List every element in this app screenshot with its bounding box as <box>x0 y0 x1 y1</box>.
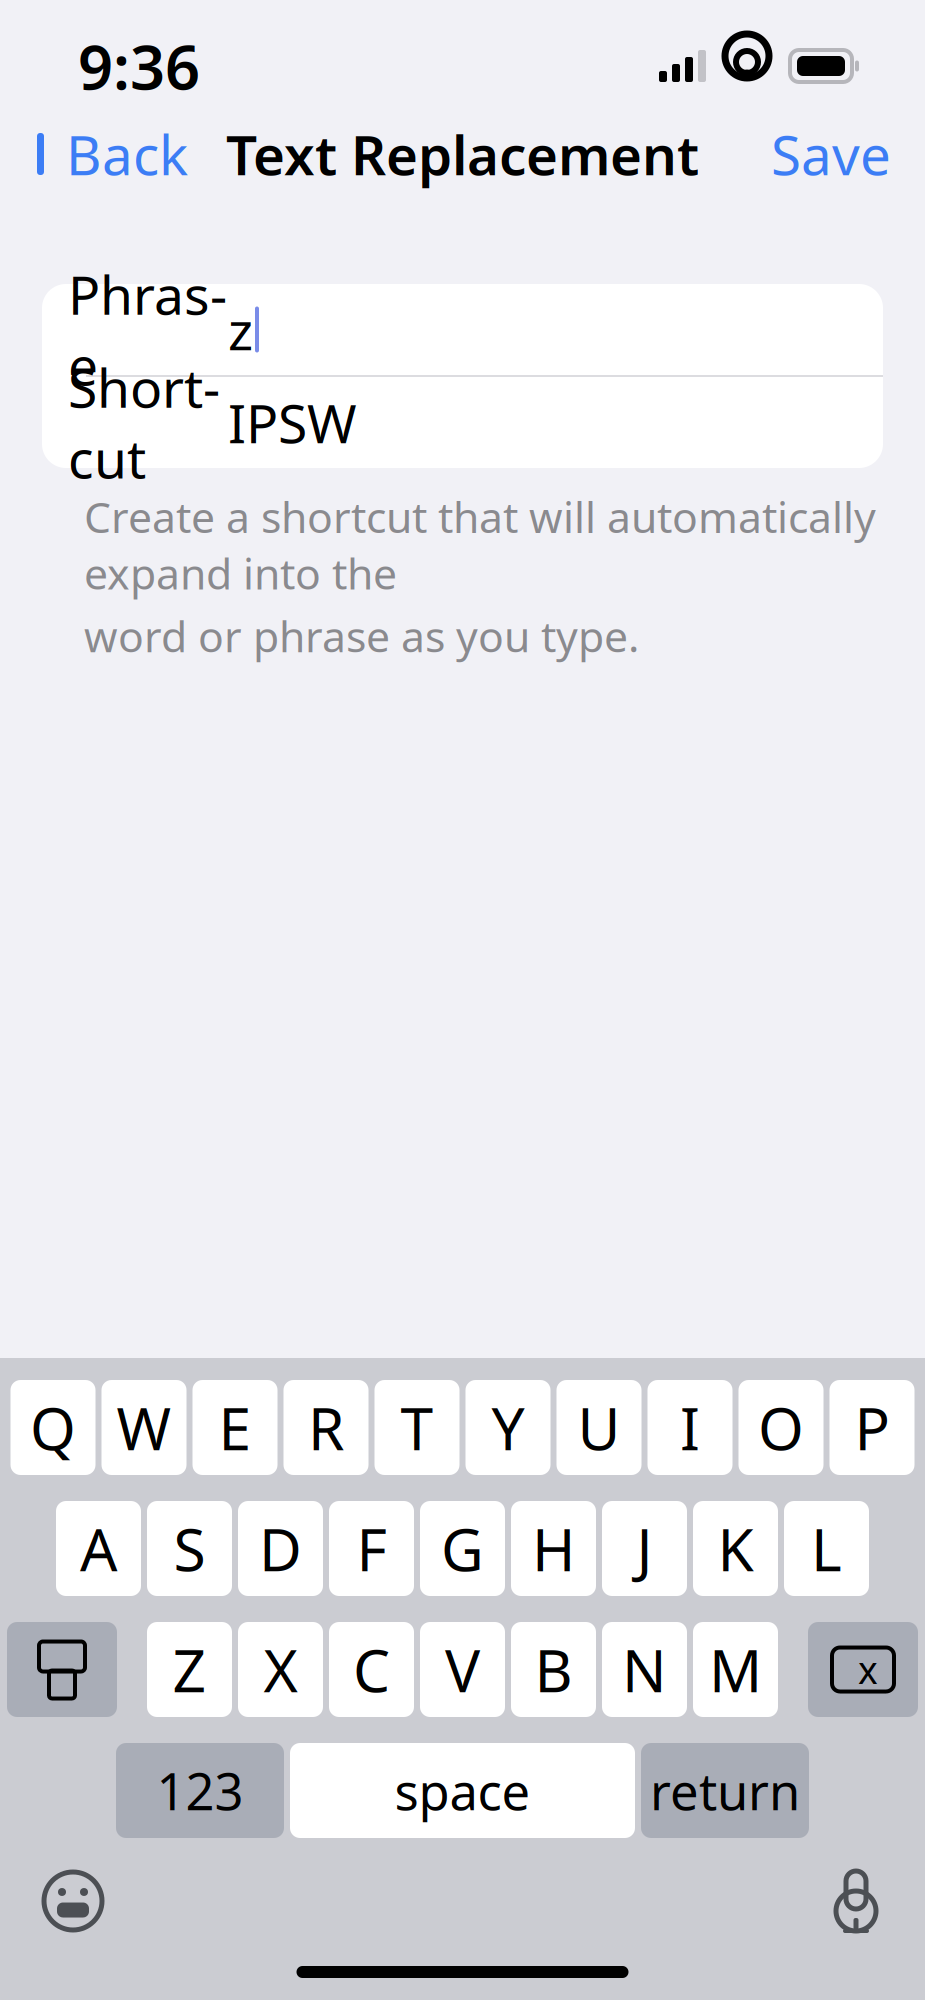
button[interactable]: I <box>647 1380 732 1475</box>
staticText: S <box>173 1509 205 1587</box>
staticText: M <box>709 1630 762 1708</box>
button[interactable]: K <box>693 1501 778 1596</box>
staticText: K <box>717 1509 753 1587</box>
staticText: V <box>445 1630 480 1708</box>
staticText: W <box>116 1388 171 1466</box>
button[interactable]: V <box>420 1622 505 1717</box>
staticText: G <box>441 1509 484 1587</box>
button[interactable]: Q <box>10 1380 95 1475</box>
button[interactable]: R <box>283 1380 368 1475</box>
staticText: R <box>308 1388 344 1466</box>
button[interactable]: T <box>374 1380 459 1475</box>
staticText: word or phrase as you type. <box>84 607 639 664</box>
staticText: T <box>400 1388 433 1466</box>
button[interactable]: C <box>329 1622 414 1717</box>
staticText: B <box>534 1630 572 1708</box>
staticText: I <box>680 1388 700 1466</box>
staticText: A <box>80 1509 117 1587</box>
button[interactable]: E <box>192 1380 277 1475</box>
button[interactable]: U <box>556 1380 641 1475</box>
button[interactable]: X <box>238 1622 323 1717</box>
button[interactable]: Shift <box>7 1622 117 1717</box>
staticText: return <box>650 1757 800 1824</box>
button[interactable]: G <box>420 1501 505 1596</box>
staticText: Phrase <box>68 259 227 400</box>
staticText: L <box>811 1509 842 1587</box>
staticText: F <box>356 1509 386 1587</box>
button[interactable]: Phrase <box>42 284 883 375</box>
staticText: Shortcut <box>68 352 220 493</box>
button[interactable]: F <box>329 1501 414 1596</box>
staticText: IPSW <box>228 387 357 458</box>
staticText: Z <box>172 1630 206 1708</box>
button[interactable]: P <box>829 1380 914 1475</box>
staticText: Create a shortcut that will automaticall… <box>84 488 876 601</box>
button[interactable]: Emoji keyboard <box>26 1854 120 1948</box>
button[interactable]: Save <box>757 108 905 200</box>
staticText: N <box>622 1630 667 1708</box>
button[interactable]: Back <box>18 108 202 200</box>
button[interactable]: 123 <box>116 1743 284 1838</box>
button[interactable]: N <box>602 1622 687 1717</box>
button[interactable]: Shortcut <box>42 377 883 468</box>
staticText: Save <box>771 118 891 190</box>
button[interactable]: O <box>738 1380 823 1475</box>
staticText: Text Replacement <box>226 118 699 190</box>
staticText: P <box>854 1388 889 1466</box>
button[interactable]: H <box>511 1501 596 1596</box>
staticText: C <box>353 1630 390 1708</box>
staticText: E <box>218 1388 251 1466</box>
button[interactable]: B <box>511 1622 596 1717</box>
staticText: Back <box>66 118 188 190</box>
button[interactable]: Y <box>465 1380 550 1475</box>
button[interactable]: W <box>101 1380 186 1475</box>
button[interactable]: J <box>602 1501 687 1596</box>
staticText: 123 <box>156 1757 243 1824</box>
button[interactable]: S <box>147 1501 232 1596</box>
button[interactable]: return <box>641 1743 809 1838</box>
staticText: z <box>228 294 253 365</box>
staticText: U <box>577 1388 620 1466</box>
staticText: 9:36 <box>78 25 200 107</box>
staticText: X <box>263 1630 297 1708</box>
button[interactable]: M <box>693 1622 778 1717</box>
staticText: Q <box>30 1388 76 1466</box>
button[interactable]: Dictation <box>817 1852 895 1950</box>
staticText: D <box>259 1509 302 1587</box>
staticText: space <box>394 1757 530 1824</box>
staticText: O <box>758 1388 804 1466</box>
staticText: Y <box>491 1388 524 1466</box>
button[interactable]: D <box>238 1501 323 1596</box>
button[interactable]: L <box>784 1501 869 1596</box>
staticText: J <box>636 1509 652 1587</box>
staticText: H <box>532 1509 575 1587</box>
staticText: x <box>858 1645 878 1694</box>
button[interactable]: Delete <box>808 1622 918 1717</box>
button[interactable]: A <box>56 1501 141 1596</box>
button[interactable]: Z <box>147 1622 232 1717</box>
button[interactable]: space <box>290 1743 635 1838</box>
